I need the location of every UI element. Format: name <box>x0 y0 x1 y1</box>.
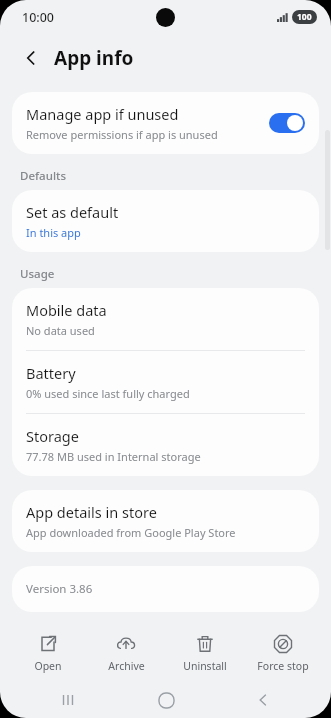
staticText: Defaults <box>20 168 66 184</box>
staticText: Storage <box>26 426 79 446</box>
staticText: 100 <box>297 11 312 23</box>
staticText: No data used <box>26 323 95 338</box>
staticText: Version 3.86 <box>26 581 93 597</box>
staticText: 0% used since last fully charged <box>26 386 190 401</box>
button[interactable]: Mobile data <box>12 288 319 350</box>
button[interactable]: Archive <box>89 630 163 677</box>
staticText: Force stop <box>257 659 309 673</box>
staticText: Uninstall <box>183 659 227 673</box>
button[interactable]: App details in store <box>12 490 319 552</box>
button[interactable]: Version 3.86 <box>12 566 319 612</box>
staticText: 10:00 <box>22 9 55 26</box>
button[interactable]: Set as default <box>12 190 319 252</box>
staticText: Mobile data <box>26 300 107 320</box>
button[interactable]: Manage app if unused toggle <box>269 113 305 133</box>
button[interactable]: Recents <box>38 685 98 715</box>
staticText: Battery <box>26 363 76 383</box>
button[interactable]: Battery <box>12 351 319 413</box>
staticText: Set as default <box>26 202 119 222</box>
staticText: App details in store <box>26 502 157 522</box>
staticText: In this app <box>26 225 81 240</box>
staticText: Usage <box>20 266 55 282</box>
button[interactable]: Storage <box>12 414 319 476</box>
button[interactable]: Home <box>136 685 196 715</box>
button[interactable]: Back <box>233 685 293 715</box>
button[interactable]: Open <box>11 630 85 677</box>
button[interactable]: Uninstall <box>168 630 242 677</box>
staticText: App info <box>54 45 134 71</box>
button[interactable]: Back <box>14 41 48 75</box>
staticText: Manage app if unused <box>26 104 179 124</box>
staticText: App downloaded from Google Play Store <box>26 525 236 540</box>
staticText: Remove permissions if app is unused <box>26 127 218 142</box>
button[interactable]: Force stop <box>246 630 320 677</box>
staticText: Open <box>34 659 62 673</box>
button[interactable]: Manage app if unused <box>12 92 319 154</box>
staticText: 77.78 MB used in Internal storage <box>26 449 201 464</box>
staticText: Archive <box>108 659 145 673</box>
